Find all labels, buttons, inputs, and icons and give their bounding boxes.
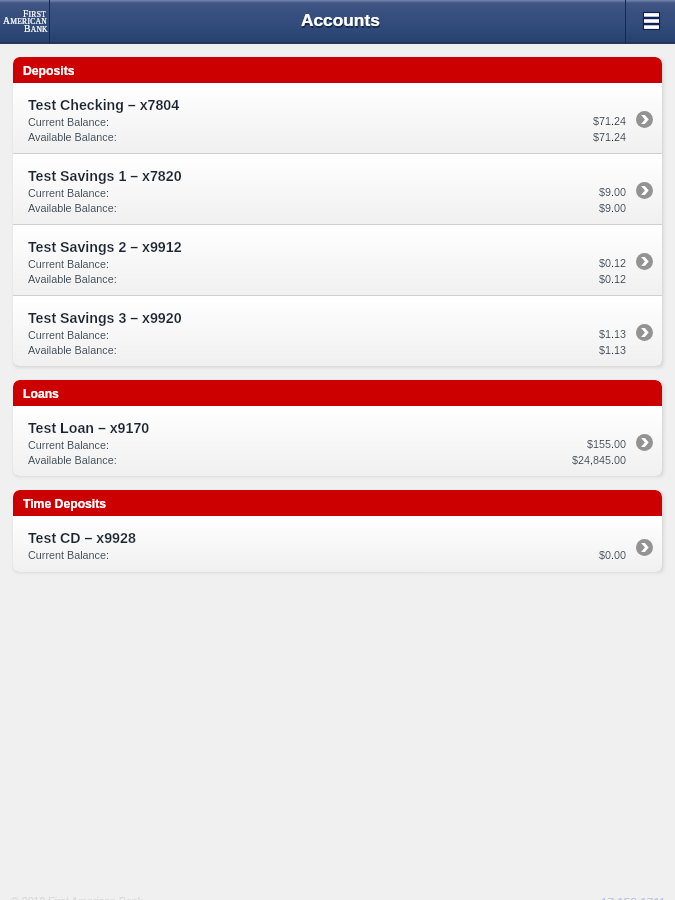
staticText: Available Balance: (28, 454, 117, 466)
staticText: Accounts (301, 10, 380, 29)
staticText: $71.24 (593, 115, 627, 127)
staticText: Available Balance: (28, 344, 117, 356)
staticText: FIRST (23, 8, 47, 19)
button[interactable]: Test Loan – x9170 (13, 406, 662, 476)
staticText: Test CD – x9928 (28, 530, 136, 546)
staticText: $9.00 (599, 202, 627, 214)
button[interactable]: Test Savings 3 – x9920 (13, 296, 662, 366)
staticText: Test Checking – x7804 (28, 97, 180, 113)
staticText: Current Balance: (28, 187, 110, 199)
staticText: $0.12 (599, 257, 627, 269)
staticText: Time Deposits (23, 497, 107, 511)
button[interactable]: First American Bank home (0, 0, 49, 44)
button[interactable]: Test Savings 2 – x9912 (13, 225, 662, 295)
staticText: $9.00 (599, 186, 627, 198)
staticText: v17.153.1711 (595, 895, 666, 900)
staticText: Test Loan – x9170 (28, 420, 150, 436)
staticText: Current Balance: (28, 439, 110, 451)
staticText: $71.24 (593, 131, 627, 143)
staticText: $0.00 (599, 549, 627, 561)
staticText: Current Balance: (28, 549, 110, 561)
staticText: Test Savings 3 – x9920 (28, 310, 182, 326)
staticText: $1.13 (599, 344, 627, 356)
staticText: $155.00 (587, 438, 627, 450)
staticText: Test Savings 1 – x7820 (28, 168, 182, 184)
staticText: Current Balance: (28, 329, 110, 341)
staticText: Deposits (23, 64, 75, 78)
staticText: $1.13 (599, 328, 627, 340)
staticText: AMERICAN (3, 15, 47, 26)
staticText: $24,845.00 (572, 454, 627, 466)
staticText: Available Balance: (28, 273, 117, 285)
button[interactable]: Test Savings 1 – x7820 (13, 154, 662, 224)
staticText: Current Balance: (28, 116, 110, 128)
staticText: Test Savings 2 – x9912 (28, 239, 182, 255)
staticText: $0.12 (599, 273, 627, 285)
staticText: Available Balance: (28, 202, 117, 214)
button[interactable]: Test Checking – x7804 (13, 83, 662, 153)
staticText: BANK (24, 23, 48, 34)
staticText: Loans (23, 387, 59, 401)
staticText: Available Balance: (28, 131, 117, 143)
staticText: © 2018 First American Bank (11, 895, 144, 900)
staticText: Current Balance: (28, 258, 110, 270)
button[interactable]: Test CD – x9928 (13, 516, 662, 572)
button[interactable]: Menu (626, 0, 675, 44)
